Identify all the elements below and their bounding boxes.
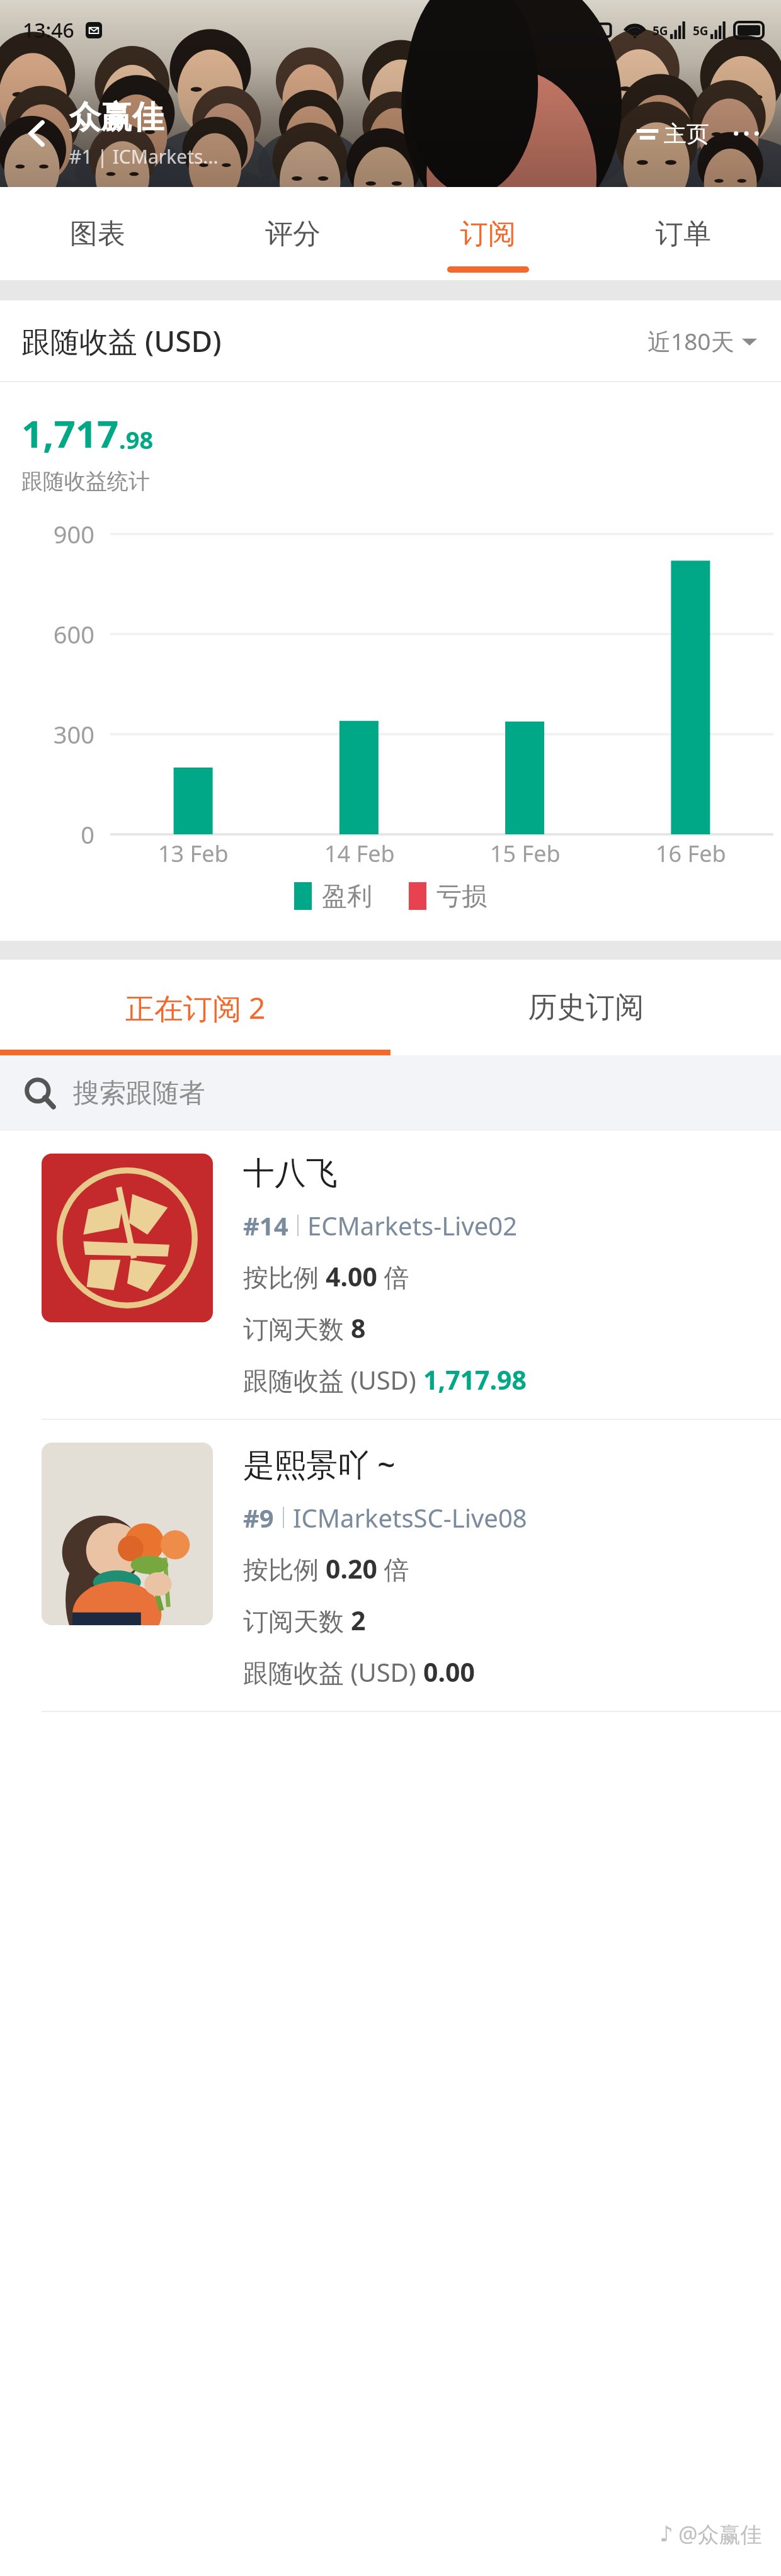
staticText: 是熙景吖 ~ [243, 1443, 396, 1485]
staticText: #1 | ICMarkets... [69, 144, 219, 169]
button[interactable]: 是熙景吖 ~ [0, 1420, 781, 1711]
staticText: 跟随收益 (USD) [243, 1363, 423, 1397]
staticText: 搜索跟随者 [73, 1077, 205, 1110]
staticText: 13 Feb [158, 838, 229, 869]
button[interactable]: 评分 [195, 187, 390, 280]
staticText: .98 [119, 423, 154, 456]
staticText: 倍 [377, 1259, 409, 1294]
staticText: 十八飞 [243, 1154, 338, 1193]
staticText: 600 [25, 618, 94, 650]
staticText: 13:46 [23, 16, 74, 44]
staticText: ECMarkets-Live02 [307, 1208, 518, 1242]
staticText: 16 Feb [656, 838, 726, 869]
staticText: 正在订阅 2 [125, 988, 266, 1028]
staticText: 主页 [664, 120, 709, 148]
staticText: 4.00 [326, 1259, 377, 1294]
staticText: #14 [243, 1208, 288, 1242]
staticText: 订阅天数 [243, 1311, 351, 1346]
staticText: 评分 [265, 217, 321, 251]
staticText: 订阅 [460, 217, 516, 251]
staticText: 众赢佳 [69, 98, 164, 137]
staticText: 跟随收益统计 [21, 468, 150, 495]
staticText: 8 [351, 1310, 366, 1346]
button[interactable]: 历史订阅 [390, 960, 781, 1055]
staticText: 1,717.98 [423, 1362, 527, 1397]
button[interactable]: 图表 [0, 187, 195, 280]
staticText: 跟随收益 (USD) [21, 321, 222, 361]
staticText: 5G [653, 23, 668, 39]
button[interactable]: Back [13, 109, 62, 158]
staticText: 倍 [377, 1552, 409, 1586]
button[interactable]: More options [726, 113, 767, 154]
staticText: #9 [243, 1501, 274, 1535]
staticText: 历史订阅 [528, 989, 644, 1026]
button[interactable]: 十八飞 [0, 1131, 781, 1419]
staticText: 按比例 [243, 1552, 326, 1586]
button[interactable]: 近180天 [642, 320, 762, 362]
staticText: 0.20 [326, 1551, 377, 1586]
staticText: ♪ [659, 2521, 673, 2546]
button[interactable]: 主页 [631, 113, 714, 154]
button[interactable]: 订单 [586, 187, 781, 280]
staticText: 跟随收益 (USD) [243, 1655, 423, 1689]
staticText: 图表 [70, 217, 125, 251]
staticText: ICMarketsSC-Live08 [293, 1501, 527, 1535]
staticText: 盈利 [322, 880, 372, 912]
staticText: @众赢佳 [678, 2519, 762, 2548]
staticText: 14 Feb [324, 838, 395, 869]
staticText: 15 Feb [490, 838, 561, 869]
staticText: 0 [25, 818, 94, 851]
staticText: 1,717 [21, 407, 119, 459]
staticText: 按比例 [243, 1259, 326, 1294]
staticText: 0.00 [423, 1654, 475, 1689]
staticText: 订单 [656, 217, 711, 251]
button[interactable]: 搜索跟随者 [0, 1055, 781, 1131]
staticText: 亏损 [436, 880, 487, 912]
staticText: 5G [693, 23, 709, 39]
staticText: 300 [25, 718, 94, 751]
button[interactable]: 正在订阅 2 [0, 960, 390, 1055]
button[interactable]: 订阅 [390, 187, 586, 280]
staticText: 900 [25, 518, 94, 550]
staticText: 订阅天数 [243, 1603, 351, 1638]
staticText: 近180天 [647, 325, 734, 357]
staticText: 2 [351, 1603, 366, 1638]
